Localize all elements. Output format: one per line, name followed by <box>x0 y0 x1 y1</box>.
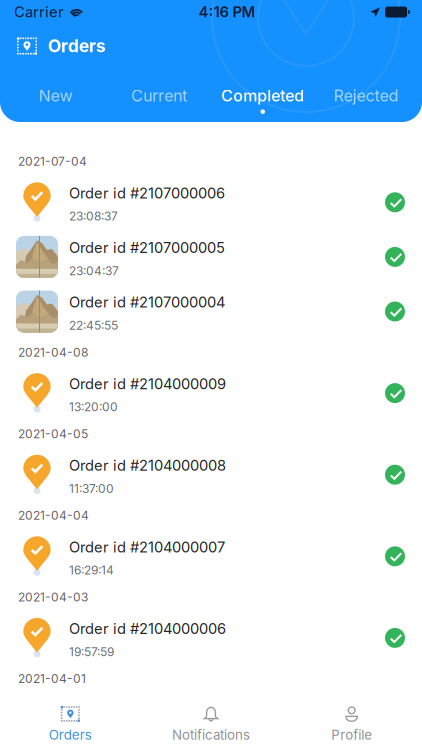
button[interactable]: Order id #2107000006 <box>0 175 422 230</box>
button[interactable]: Order id #2104000006 <box>0 611 422 665</box>
staticText: 2021-04-03 <box>18 590 88 604</box>
staticText: Rejected <box>334 86 399 105</box>
staticText: 2021-07-04 <box>18 154 87 169</box>
staticText: Order id #2107000005 <box>69 239 225 256</box>
staticText: 2021-04-05 <box>18 427 88 441</box>
staticText: 4:16 PM <box>198 3 255 21</box>
staticText: Order id #2104000007 <box>69 538 225 556</box>
staticText: Order id #2104000009 <box>69 375 226 393</box>
button[interactable]: Current <box>107 85 211 115</box>
button[interactable]: Order id #2104000009 <box>0 366 422 420</box>
staticText: Profile <box>331 727 372 743</box>
staticText: New <box>39 86 73 105</box>
staticText: 22:45:55 <box>69 318 118 333</box>
staticText: 2021-04-04 <box>18 508 89 523</box>
staticText: 13:20:00 <box>69 400 118 414</box>
staticText: 11:37:00 <box>69 481 114 496</box>
button[interactable]: Rejected <box>314 85 418 115</box>
staticText: 23:04:37 <box>69 263 119 278</box>
button[interactable]: New <box>4 85 107 115</box>
staticText: Order id #2104000008 <box>69 457 226 474</box>
staticText: Order id #2107000004 <box>69 293 225 311</box>
staticText: Orders <box>49 727 92 743</box>
staticText: Current <box>131 86 187 105</box>
staticText: Order id #2104000006 <box>69 620 226 637</box>
button[interactable]: Order id #2104000007 <box>0 529 422 584</box>
staticText: Notifications <box>172 727 250 743</box>
staticText: Completed <box>221 86 304 105</box>
staticText: 2021-04-01 <box>18 671 86 686</box>
staticText: Order id #2107000006 <box>69 184 225 202</box>
staticText: Carrier <box>14 3 64 21</box>
button[interactable]: Orders <box>0 700 141 749</box>
button[interactable]: Order id #2107000005 <box>0 230 422 284</box>
button[interactable]: Profile <box>281 700 422 749</box>
staticText: 16:29:14 <box>69 563 114 577</box>
staticText: Orders <box>48 35 106 56</box>
button[interactable]: Completed <box>211 85 314 115</box>
staticText: 2021-04-08 <box>18 345 88 359</box>
staticText: 19:57:59 <box>69 644 114 659</box>
button[interactable]: Order id #2104000008 <box>0 447 422 502</box>
button[interactable]: Order id #2107000004 <box>0 284 422 339</box>
button[interactable]: Notifications <box>141 700 281 749</box>
staticText: 23:08:37 <box>69 209 118 223</box>
